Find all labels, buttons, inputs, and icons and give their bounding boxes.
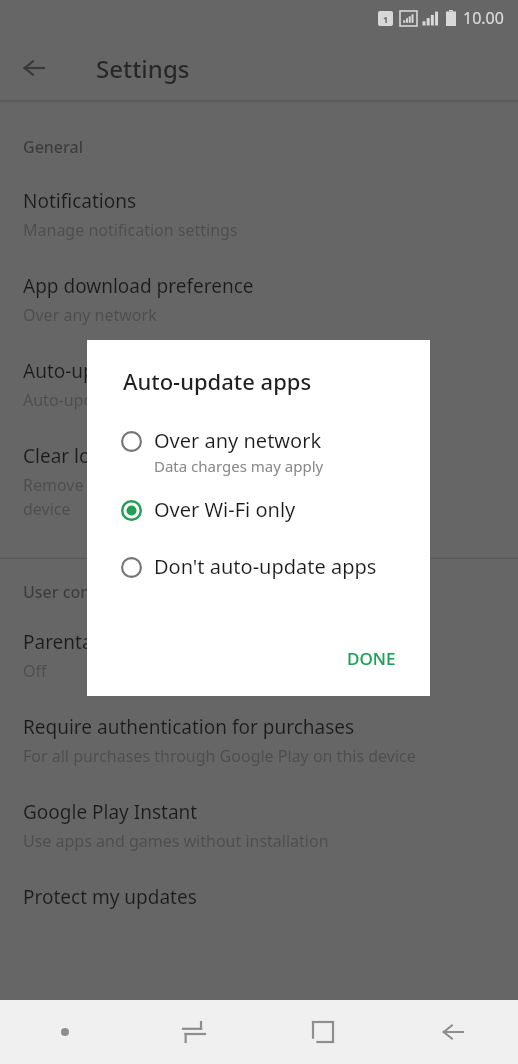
button[interactable]: Over Wi-Fi only	[87, 492, 430, 527]
staticText: User controls	[23, 581, 125, 603]
staticText: Auto-update apps	[123, 366, 312, 396]
staticText: Settings	[96, 52, 190, 85]
button[interactable]: Require authentication for purchases	[0, 714, 518, 799]
button[interactable]: Notifications	[0, 188, 518, 273]
staticText: Use apps and games without installation	[23, 830, 329, 852]
staticText: Google Play Instant	[23, 799, 198, 825]
button[interactable]: Back	[10, 44, 58, 92]
staticText: Don't auto-update apps	[154, 553, 377, 580]
staticText: DONE	[347, 647, 396, 670]
button[interactable]: Clear local search history	[0, 443, 518, 548]
staticText: Data charges may apply	[154, 456, 324, 476]
button[interactable]: Over any network	[87, 423, 430, 480]
staticText: Parental controls	[23, 629, 175, 655]
staticText: Protect my updates	[23, 884, 197, 910]
staticText: Over Wi-Fi only	[154, 496, 296, 523]
staticText: Require authentication for purchases	[23, 714, 355, 740]
staticText: Notifications	[23, 188, 137, 214]
button[interactable]: DONE	[333, 637, 410, 680]
staticText: Over any network	[154, 427, 322, 454]
button[interactable]: Recents	[129, 1000, 258, 1064]
staticText: General	[23, 136, 83, 158]
staticText: App download preference	[23, 273, 254, 299]
staticText: For all purchases through Google Play on…	[23, 745, 416, 767]
button[interactable]: Auto-update apps	[0, 358, 518, 443]
staticText: Clear local search history	[23, 443, 246, 469]
button[interactable]: App download preference	[0, 273, 518, 358]
staticText: 10.00	[463, 7, 504, 29]
staticText: Auto-update apps over Wi-Fi only	[23, 389, 272, 411]
staticText: Off	[23, 660, 47, 682]
staticText: 1	[383, 13, 389, 25]
button[interactable]: Google Play Instant	[0, 799, 518, 884]
staticText: Remove local search history on this devi…	[23, 474, 288, 520]
button[interactable]: Protect my updates	[0, 884, 518, 942]
staticText: Manage notification settings	[23, 219, 238, 241]
staticText: Auto-update apps	[23, 358, 183, 384]
button[interactable]: Notification dot	[0, 1000, 129, 1064]
button[interactable]: Back	[388, 1000, 518, 1064]
button[interactable]: Don't auto-update apps	[87, 549, 430, 584]
button[interactable]: Parental controls	[0, 629, 518, 714]
button[interactable]: Home	[258, 1000, 388, 1064]
staticText: Over any network	[23, 304, 157, 326]
